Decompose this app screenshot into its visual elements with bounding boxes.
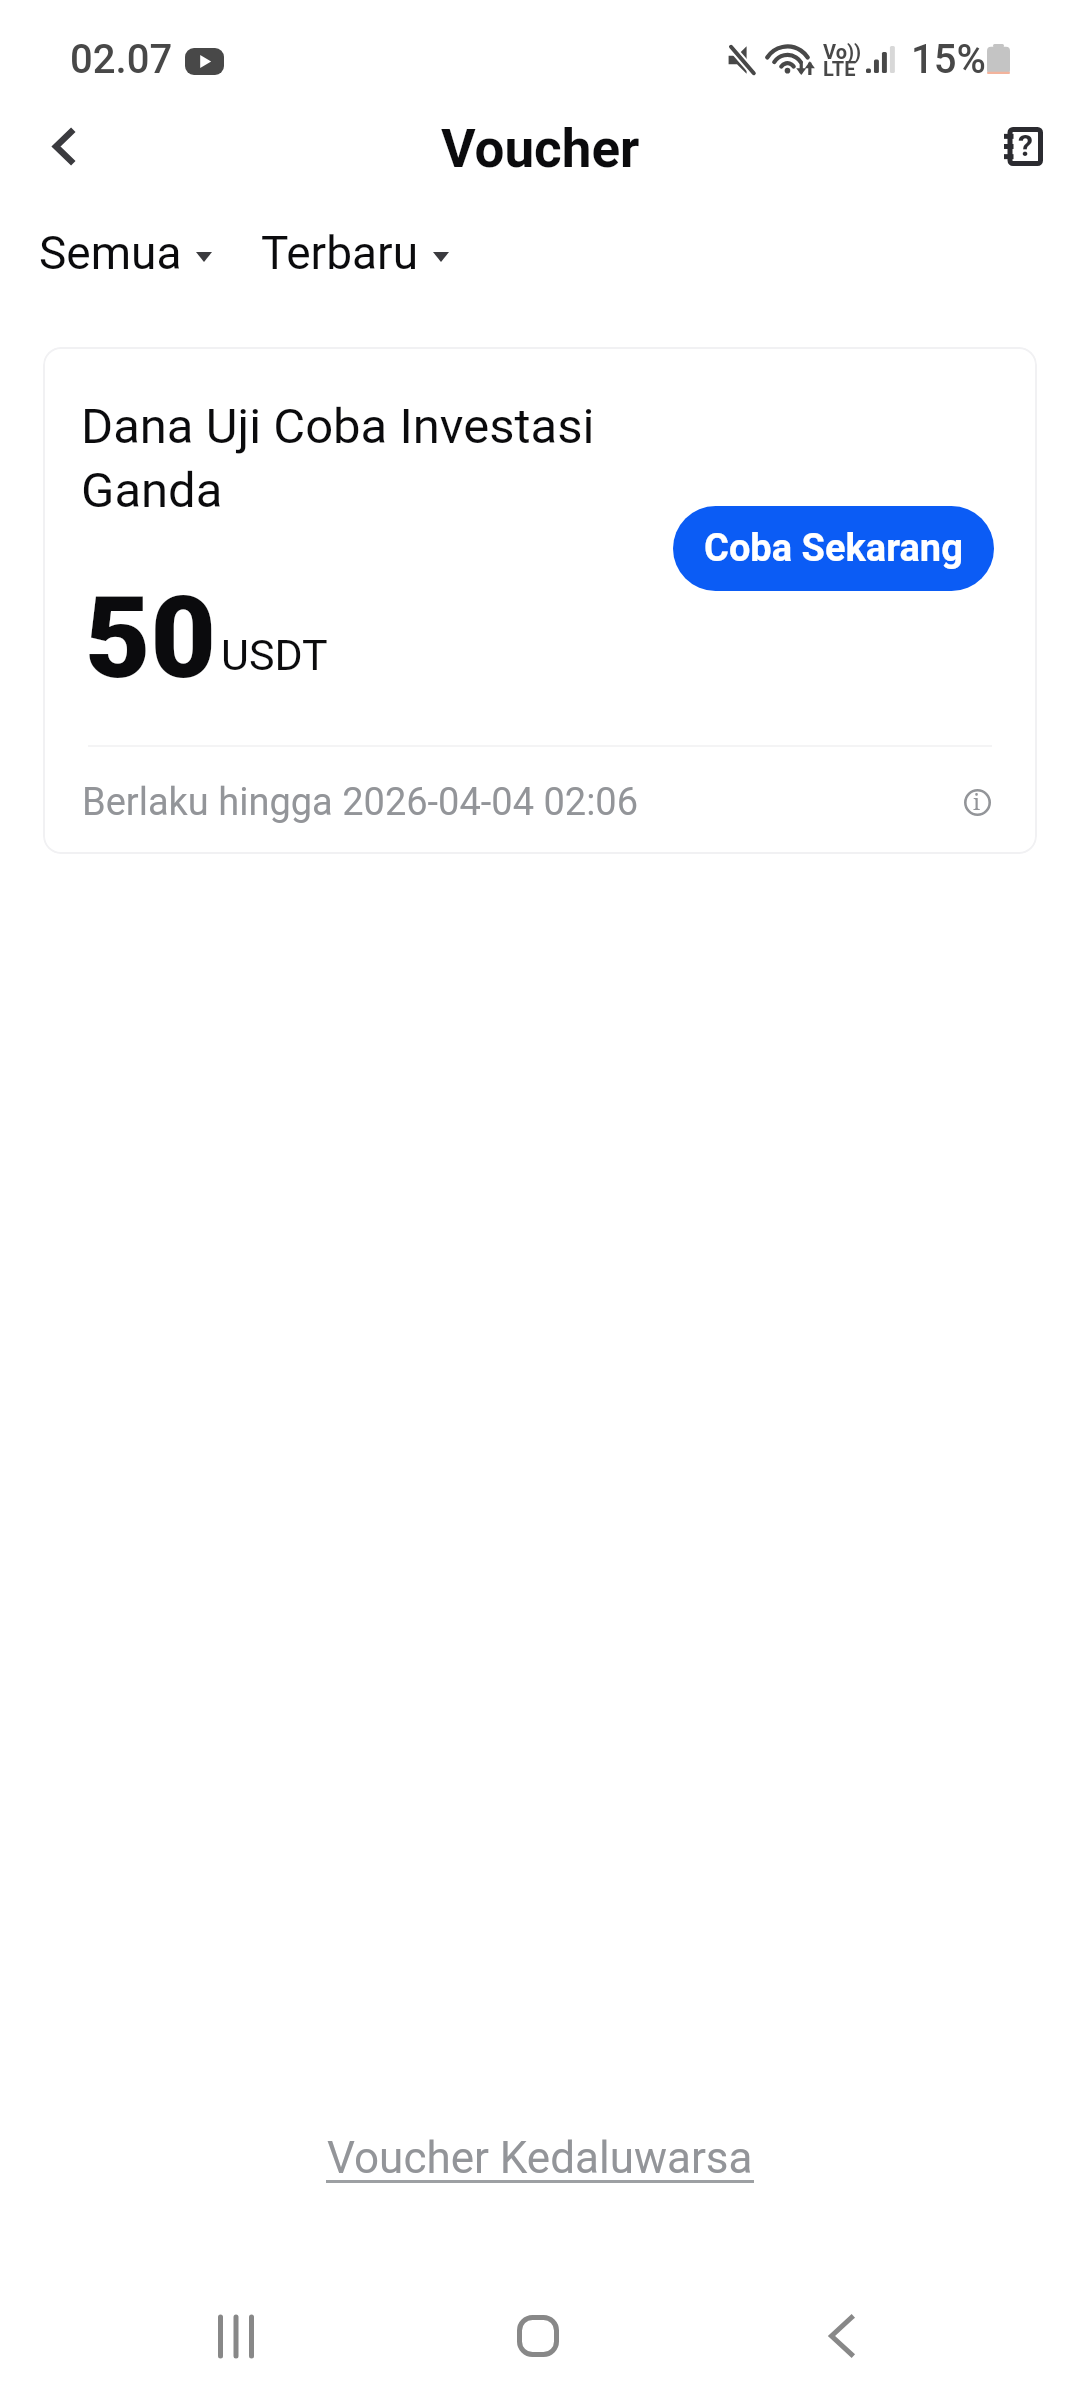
staticText: 50 (85, 572, 216, 704)
button[interactable]: Home (448, 2270, 628, 2400)
button[interactable]: Back (20, 103, 106, 189)
staticText: Vo)) (823, 40, 862, 63)
button[interactable]: Dana Uji Coba Investasi Ganda (43, 347, 1037, 854)
button[interactable]: Help (980, 103, 1066, 189)
staticText: i (973, 786, 981, 816)
staticText: 02.07 (70, 36, 173, 83)
button[interactable]: Voucher Kedaluwarsa (306, 2122, 774, 2197)
staticText: LTE (823, 57, 856, 80)
staticText: Terbaru (261, 226, 419, 280)
button[interactable]: Info (956, 781, 998, 823)
button[interactable]: Terbaru (249, 216, 461, 290)
button[interactable]: Coba Sekarang (673, 506, 994, 591)
staticText: Berlaku hingga 2026-04-04 02:06 (82, 780, 639, 825)
staticText: Semua (39, 226, 182, 280)
staticText: ? (1018, 128, 1033, 163)
staticText: Coba Sekarang (704, 526, 963, 571)
button[interactable]: Back (751, 2270, 931, 2400)
staticText: Voucher Kedaluwarsa (327, 2132, 753, 2184)
button[interactable]: Recent apps (146, 2270, 326, 2400)
staticText: USDT (221, 630, 328, 680)
staticText: 15% (911, 36, 986, 83)
staticText: Voucher (441, 118, 640, 180)
button[interactable]: Semua (27, 216, 224, 290)
staticText: Dana Uji Coba Investasi Ganda (81, 398, 595, 519)
